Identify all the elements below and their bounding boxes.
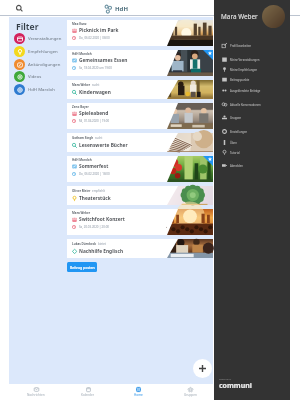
staticText: Switchfoot Konzert [79, 216, 125, 222]
staticText: HdH Marxloh [28, 86, 55, 92]
staticText: Sa, 18.04.2020 um 19:00 [79, 66, 112, 70]
staticText: Oliver Meier [72, 189, 91, 193]
staticText: Max Kunz [72, 22, 87, 26]
staticText: Aktuelle Konversationen [230, 103, 261, 107]
button[interactable]: Ausgeblendete Beiträge [222, 86, 290, 95]
button[interactable]: Kalender [63, 384, 113, 400]
button[interactable]: Profil bearbeiten [222, 41, 290, 50]
staticText: sucht [92, 83, 100, 87]
button[interactable]: Abmelden [222, 161, 290, 170]
staticText: Gruppen [184, 393, 197, 397]
staticText: HdH Marxloh [72, 52, 92, 56]
staticText: Mara Weber [72, 211, 91, 215]
staticText: Spieleabend [79, 110, 109, 116]
button[interactable]: Meine Empfehlungen [222, 65, 290, 74]
button[interactable]: Meine Veranstaltungen [222, 55, 290, 64]
button[interactable]: Zeno Bayer [67, 103, 213, 129]
staticText: Nachrichten [27, 393, 45, 397]
staticText: Mara Weber [221, 12, 258, 21]
button[interactable]: Search [11, 0, 27, 16]
button[interactable]: HdH Marxloh [14, 83, 66, 95]
staticText: Sa, 20.03.2020 | 20:00 [79, 225, 109, 229]
button[interactable]: Üben [222, 138, 290, 147]
staticText: Gotham Singh [72, 136, 94, 140]
staticText: Gemeinsames Essen [79, 57, 128, 63]
button[interactable]: Beitrag posten [67, 262, 97, 272]
staticText: empfiehlt [92, 189, 106, 193]
staticText: Einstellungen [230, 130, 248, 134]
staticText: Veranstaltungen [28, 35, 62, 41]
button[interactable]: Ankündigungen [14, 58, 66, 70]
button[interactable]: Empfehlungen [14, 45, 66, 57]
button[interactable]: Max Kunz [67, 20, 213, 46]
staticText: Profil bearbeiten [230, 44, 252, 48]
button[interactable]: Home [113, 384, 163, 400]
staticText: Mi, 01.04.2020 | 19:00 [79, 119, 110, 123]
staticText: Empfehlungen [28, 48, 58, 54]
staticText: Sommerfest [79, 163, 109, 169]
staticText: Mara Weber [72, 83, 91, 87]
staticText: Filter [16, 21, 39, 33]
button[interactable]: Nachrichten [11, 384, 61, 400]
button[interactable]: Einstellungen [222, 127, 290, 136]
staticText: Kalender [81, 393, 95, 397]
button[interactable]: Gotham Singh [67, 133, 213, 152]
button[interactable]: Aktuelle Konversationen [222, 100, 290, 109]
button[interactable]: Videos [14, 70, 66, 82]
staticText: Lesenswerte Bücher [79, 142, 128, 148]
staticText: Üben [230, 141, 237, 145]
button[interactable]: Mara Weber [67, 80, 213, 99]
staticText: HdH Marxloh [72, 158, 92, 162]
staticText: Meine Veranstaltungen [230, 58, 260, 62]
staticText: Videos [28, 73, 42, 79]
staticText: powered by [219, 378, 232, 381]
staticText: Ankündigungen [28, 61, 61, 67]
staticText: Abmelden [230, 164, 243, 168]
button[interactable]: Mara Weber [67, 209, 213, 235]
button[interactable]: Veranstaltungen [14, 32, 66, 44]
staticText: Beitrag posten [70, 265, 95, 270]
button[interactable]: HdH Marxloh [67, 50, 213, 76]
button[interactable]: Gruppen [222, 113, 290, 122]
staticText: Meine Empfehlungen [230, 68, 258, 72]
staticText: Nachhilfe Englisch [79, 248, 124, 254]
staticText: sucht [95, 136, 103, 140]
button[interactable]: Tutorial [222, 148, 290, 157]
staticText: Theaterstück [79, 195, 111, 201]
staticText: bietet [98, 242, 106, 246]
button[interactable]: Lukas Dürnbeck [67, 239, 213, 258]
button[interactable]: Add post [193, 359, 212, 378]
staticText: Beitragspunkte [230, 78, 250, 82]
button[interactable]: Oliver Meier [67, 186, 213, 205]
button[interactable]: HdH Marxloh [67, 156, 213, 182]
button[interactable]: Gruppen [165, 384, 215, 400]
staticText: Zeno Bayer [72, 105, 89, 109]
staticText: communi [219, 381, 252, 391]
button[interactable]: Beitragspunkte [222, 75, 290, 84]
staticText: Ausgeblendete Beiträge [230, 89, 261, 93]
staticText: Tutorial [230, 151, 240, 155]
staticText: Picknick im Park [79, 27, 119, 33]
staticText: HdH [115, 5, 128, 13]
staticText: Do, 06.02.2020 | 08:00 [79, 36, 110, 40]
staticText: Lukas Dürnbeck [72, 242, 97, 246]
staticText: Kinderwagen [79, 89, 111, 95]
staticText: Home [134, 393, 143, 397]
staticText: Do, 06.02.2020 | 18:00 [79, 172, 110, 176]
staticText: Gruppen [230, 116, 242, 120]
